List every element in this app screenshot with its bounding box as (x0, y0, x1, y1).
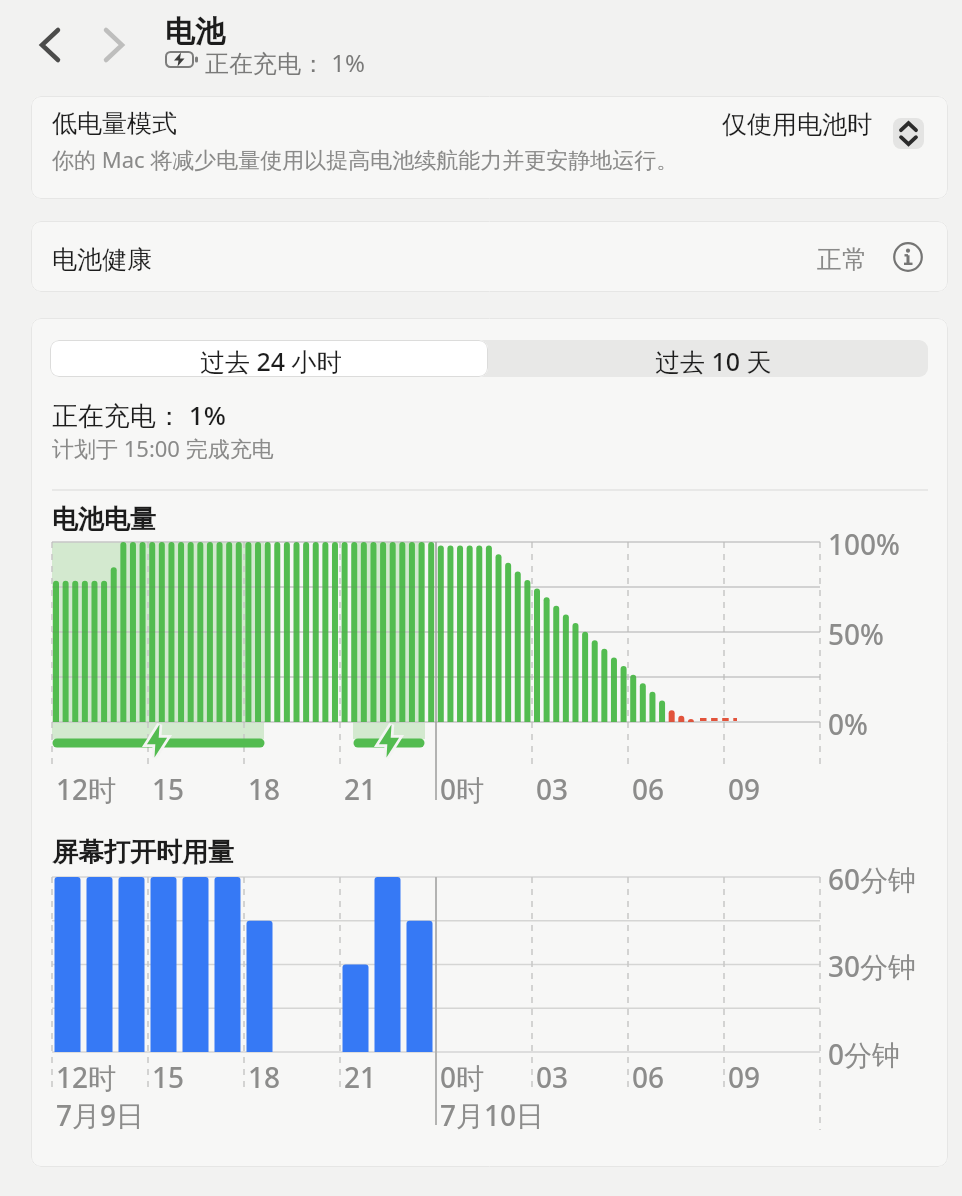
staticText: 电池电量 (52, 503, 156, 536)
button[interactable] (890, 242, 922, 274)
staticText: 21 (344, 1058, 377, 1096)
staticText: 50% (828, 615, 884, 653)
staticText: 0% (828, 705, 868, 743)
button[interactable] (488, 340, 928, 377)
staticText: 正在充电： 1% (205, 46, 365, 79)
staticText: 7月9日 (56, 1096, 145, 1134)
staticText: 100% (828, 525, 900, 563)
staticText: 7月10日 (440, 1096, 545, 1134)
staticText: 低电量模式 (52, 108, 177, 139)
staticText: 03 (536, 770, 569, 808)
staticText: 12时 (56, 1058, 117, 1096)
staticText: 15 (152, 1058, 185, 1096)
button[interactable] (50, 340, 488, 377)
staticText: 0时 (440, 770, 485, 808)
staticText: 12时 (56, 770, 117, 808)
staticText: 06 (632, 1058, 665, 1096)
button[interactable] (700, 105, 932, 160)
staticText: 屏幕打开时用量 (52, 836, 234, 869)
staticText: 0分钟 (828, 1035, 901, 1073)
staticText: 正常 (817, 244, 867, 275)
button[interactable] (38, 28, 138, 62)
staticText: 60分钟 (828, 860, 917, 898)
staticText: 15 (152, 770, 185, 808)
staticText: 30分钟 (828, 947, 917, 985)
staticText: 电池健康 (52, 244, 152, 275)
staticText: 计划于 15:00 完成充电 (52, 433, 274, 463)
staticText: 仅使用电池时 (722, 109, 872, 140)
staticText: 0时 (440, 1058, 485, 1096)
staticText: 过去 10 天 (655, 344, 772, 378)
staticText: 21 (344, 770, 377, 808)
staticText: 09 (728, 1058, 761, 1096)
staticText: 06 (632, 770, 665, 808)
staticText: 03 (536, 1058, 569, 1096)
staticText: 09 (728, 770, 761, 808)
staticText: 过去 24 小时 (200, 344, 342, 378)
staticText: 你的 Mac 将减少电量使用以提高电池续航能力并更安静地运行。 (52, 144, 679, 174)
staticText: 正在充电： 1% (52, 397, 226, 433)
staticText: 电池 (165, 13, 225, 51)
staticText: 18 (248, 1058, 281, 1096)
staticText: 18 (248, 770, 281, 808)
